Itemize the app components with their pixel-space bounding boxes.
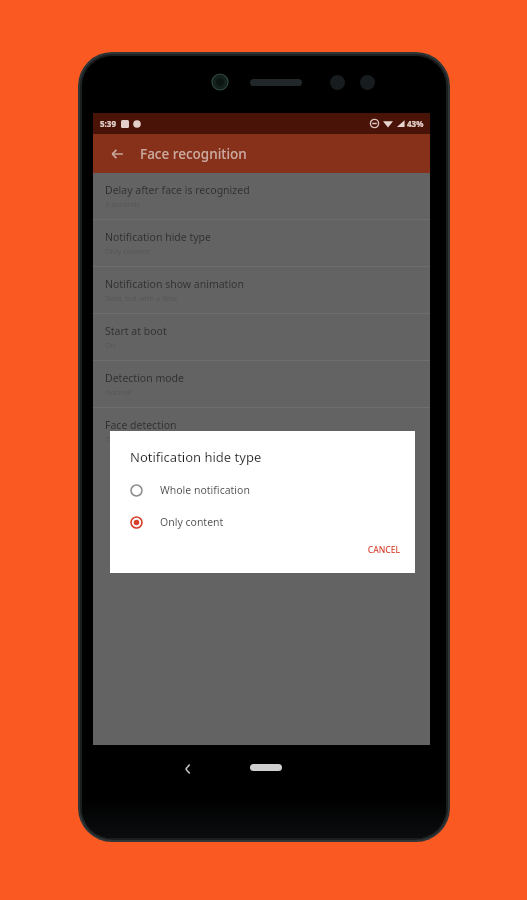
button[interactable]: Back bbox=[101, 138, 133, 170]
button[interactable]: Detection mode bbox=[93, 361, 430, 407]
button[interactable]: Face detection bbox=[93, 408, 430, 454]
staticText: Notification show animation bbox=[105, 277, 244, 291]
staticText: Whole notification bbox=[160, 483, 250, 497]
button[interactable]: Only content bbox=[130, 509, 390, 535]
button[interactable]: CANCEL bbox=[350, 539, 400, 561]
staticText: Slow, but with a flow bbox=[105, 293, 177, 303]
staticText: CANCEL bbox=[367, 544, 400, 556]
staticText: Delay after face is recognized bbox=[105, 183, 250, 197]
button[interactable]: Notification show animation bbox=[93, 267, 430, 313]
staticText: 3 seconds bbox=[105, 199, 141, 209]
staticText: On bbox=[105, 340, 116, 350]
staticText: Face detection bbox=[105, 418, 177, 432]
button[interactable]: Notification hide type bbox=[93, 220, 430, 266]
button[interactable]: Delay after face is recognized bbox=[93, 173, 430, 219]
button[interactable]: Back bbox=[172, 753, 204, 785]
staticText: Notification hide type bbox=[105, 230, 211, 244]
staticText: 43% bbox=[407, 118, 424, 129]
button[interactable]: Home bbox=[250, 764, 282, 771]
button[interactable]: Whole notification bbox=[130, 477, 390, 503]
staticText: Only content bbox=[105, 246, 151, 256]
staticText: On bbox=[105, 434, 116, 444]
staticText: Detection mode bbox=[105, 371, 184, 385]
staticText: Face recognition bbox=[140, 145, 247, 163]
button[interactable]: Start at boot bbox=[93, 314, 430, 360]
staticText: 5:39 bbox=[100, 118, 116, 129]
staticText: Notification hide type bbox=[130, 448, 262, 466]
staticText: Normal bbox=[105, 387, 132, 397]
staticText: Only content bbox=[160, 515, 224, 529]
staticText: Start at boot bbox=[105, 324, 167, 338]
